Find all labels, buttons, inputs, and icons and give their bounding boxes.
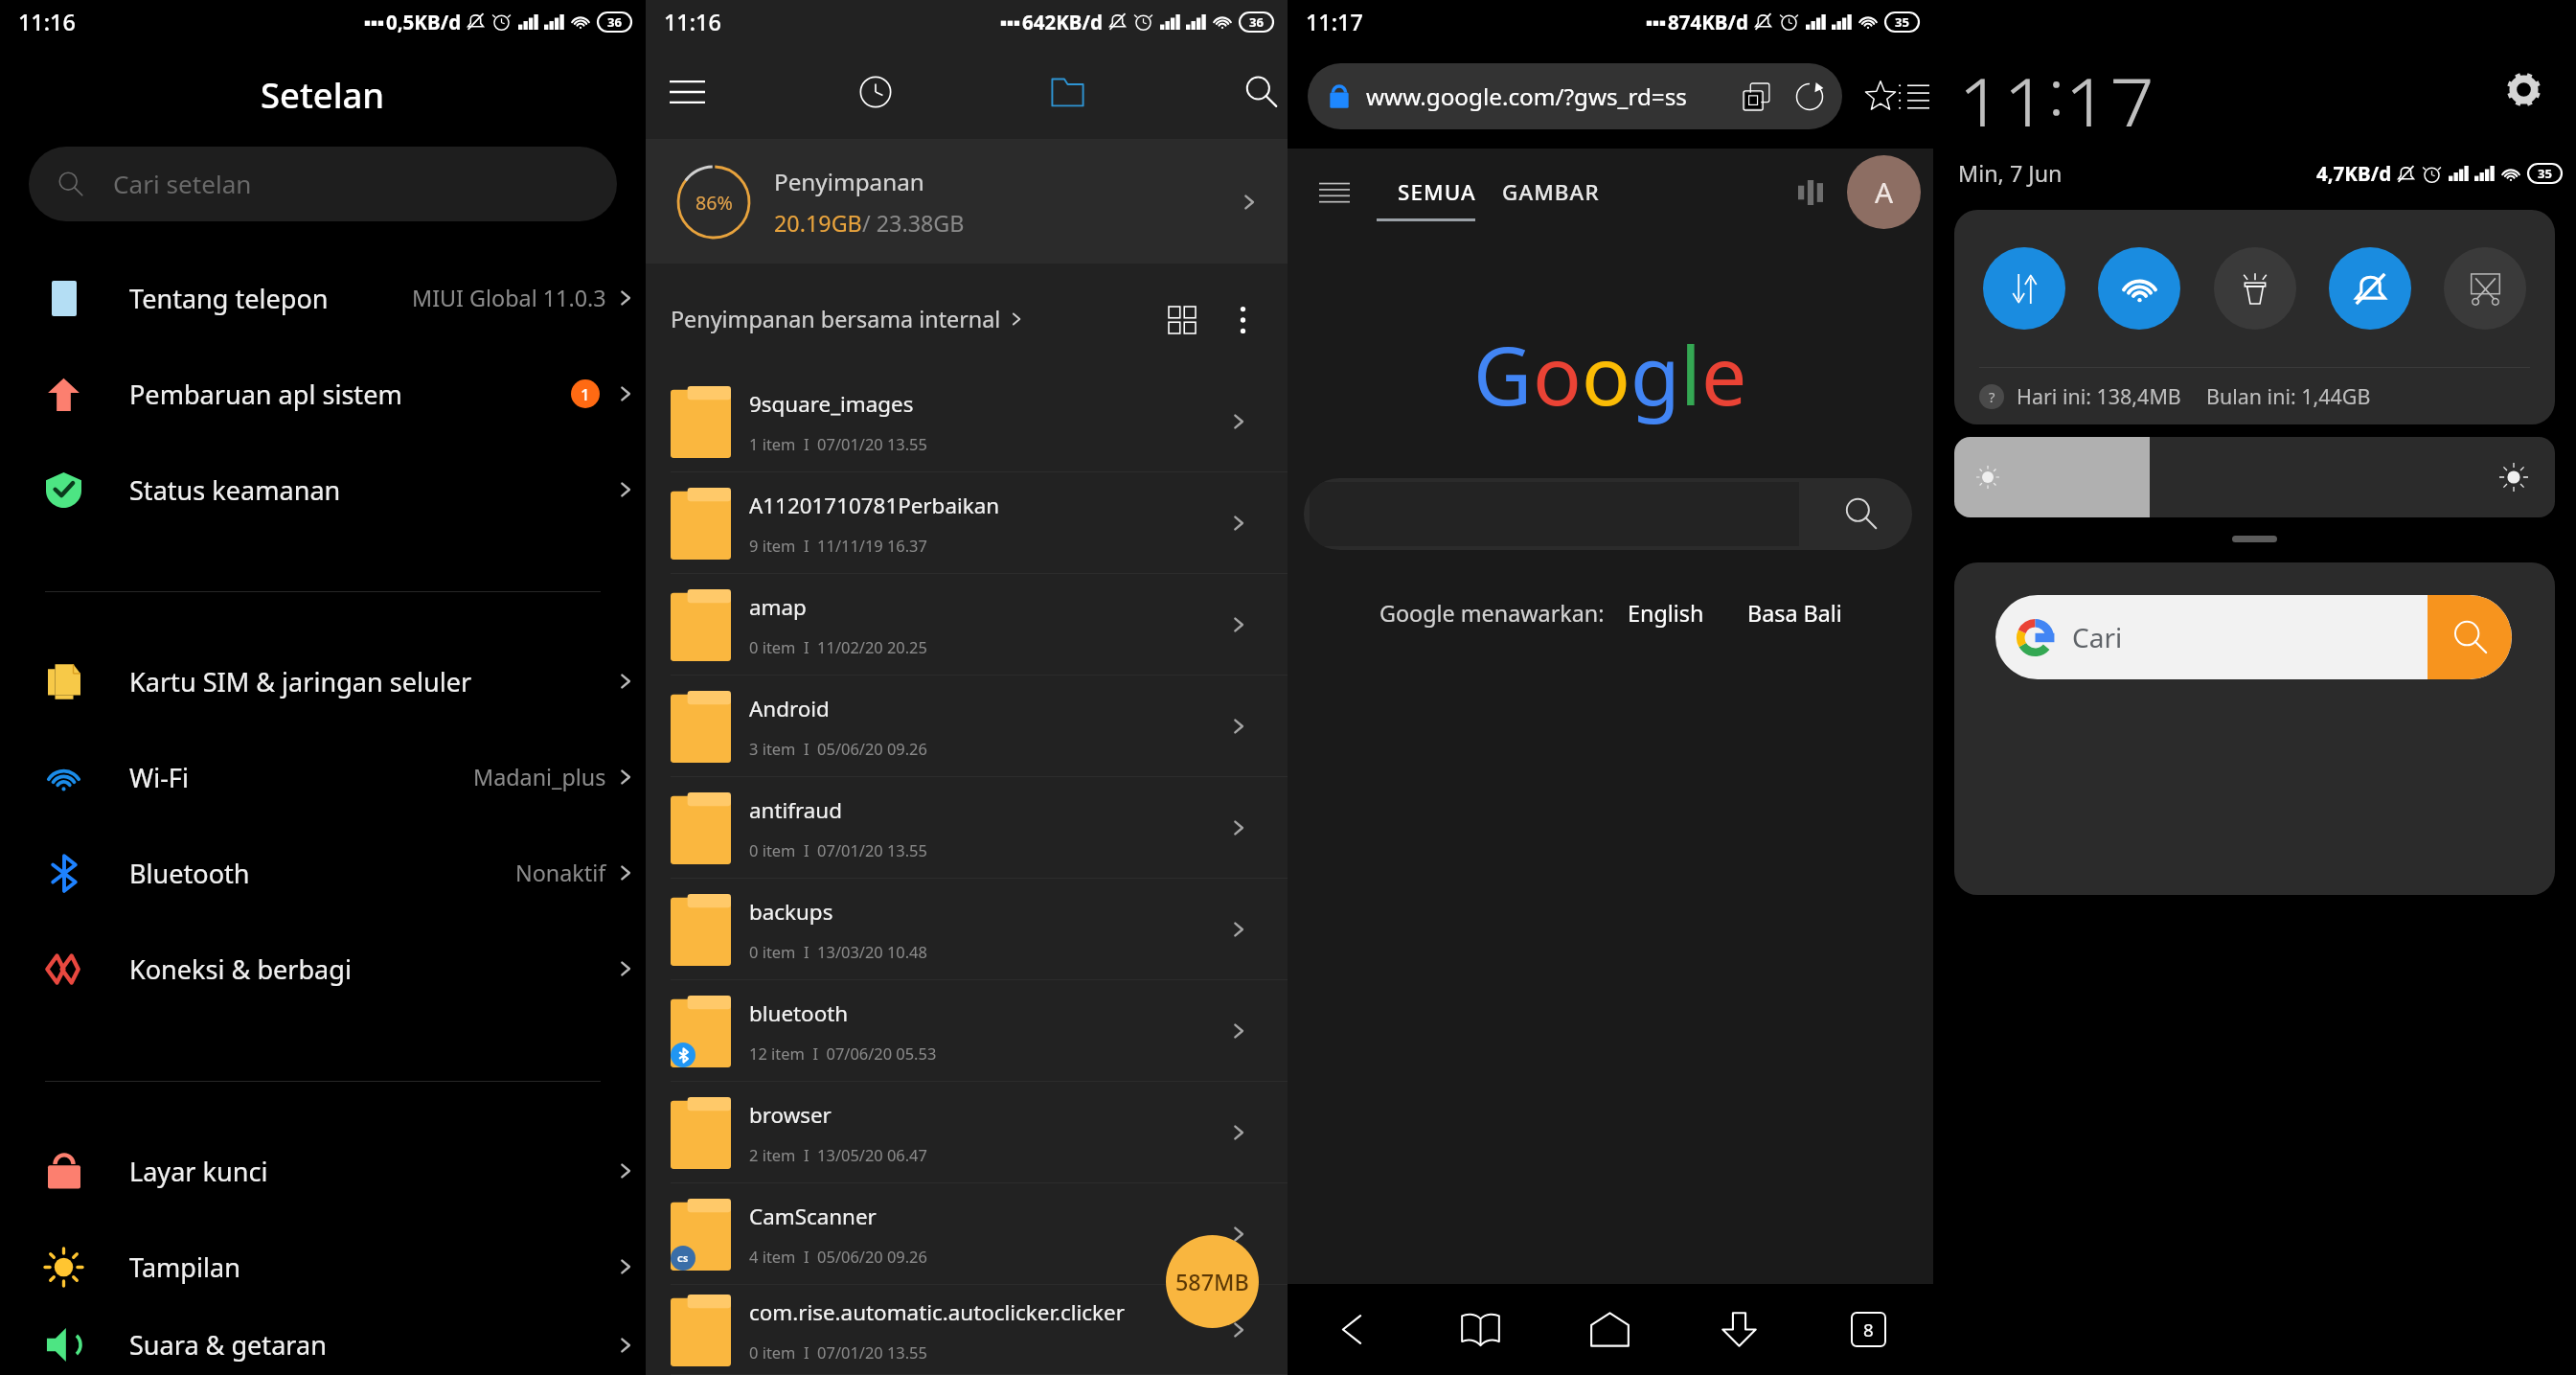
button[interactable]: Basa Bali xyxy=(1747,598,1842,629)
staticText: amap xyxy=(749,592,807,622)
button[interactable]: Recent xyxy=(854,70,897,113)
staticText: 36 xyxy=(1249,13,1264,31)
button[interactable]: Grid view xyxy=(1158,296,1205,343)
button[interactable]: Back xyxy=(1288,1284,1416,1375)
button[interactable]: Flashlight xyxy=(2214,247,2296,330)
button[interactable]: 86% xyxy=(646,140,1288,264)
staticText: 35 xyxy=(1895,13,1909,31)
staticText: www.google.com/?gws_rd=ss xyxy=(1366,80,1687,112)
button[interactable]: Search xyxy=(1240,70,1283,113)
button[interactable]: antifraud xyxy=(646,777,1288,879)
button[interactable]: SEMUA xyxy=(1391,167,1483,218)
button[interactable]: Storage used 587MB xyxy=(1166,1235,1259,1328)
button[interactable]: bluetooth xyxy=(646,980,1288,1082)
staticText: English xyxy=(1628,598,1704,629)
staticText: g xyxy=(1630,319,1680,428)
button[interactable]: Kartu SIM & jaringan seluler xyxy=(0,633,646,729)
button[interactable]: Suara & getaran xyxy=(0,1315,646,1375)
button[interactable]: Downloads xyxy=(1675,1284,1804,1375)
button[interactable]: Pembaruan apl sistem xyxy=(0,346,646,442)
button[interactable]: backups xyxy=(646,879,1288,980)
staticText: 8 xyxy=(1863,1318,1874,1341)
staticText: Nonaktif xyxy=(515,858,606,888)
staticText: 0,5KB/d xyxy=(386,9,462,35)
button[interactable]: Home xyxy=(1545,1284,1675,1375)
button[interactable]: Menu xyxy=(666,70,709,113)
button[interactable]: Silent xyxy=(2329,247,2411,330)
button[interactable]: A11201710781Perbaikan xyxy=(646,472,1288,574)
staticText: 3 item I 05/06/20 09.26 xyxy=(749,738,927,759)
staticText: Hari ini: 138,4MB xyxy=(2017,382,2181,410)
staticText: Bluetooth xyxy=(129,856,250,891)
staticText: Android xyxy=(749,694,830,723)
button[interactable]: Status keamanan xyxy=(0,442,646,538)
staticText: 587MB xyxy=(1175,1267,1249,1297)
staticText: 9 item I 11/11/19 16.37 xyxy=(749,535,927,556)
button[interactable]: Files xyxy=(1046,70,1089,113)
button[interactable]: Menu xyxy=(1894,77,1933,116)
staticText: A11201710781Perbaikan xyxy=(749,491,1000,520)
staticText: A xyxy=(1875,172,1894,212)
button[interactable]: Wi-Fi xyxy=(0,729,646,825)
button[interactable]: Lab xyxy=(1789,171,1832,214)
staticText: 11:16 xyxy=(18,7,76,37)
staticText: o xyxy=(1582,319,1630,428)
button[interactable]: Mobile data xyxy=(1983,247,2065,330)
staticText: 4 item I 05/06/20 09.26 xyxy=(749,1246,927,1267)
button[interactable]: 9square_images xyxy=(646,371,1288,472)
staticText: CS xyxy=(677,1252,689,1265)
staticText: 9square_images xyxy=(749,389,914,419)
button[interactable]: CS xyxy=(646,1183,1288,1285)
staticText: 0 item I 13/03/20 10.48 xyxy=(749,941,927,962)
staticText: / 23.38GB xyxy=(862,208,965,239)
staticText: GAMBAR xyxy=(1502,177,1600,207)
staticText: 17 xyxy=(2064,52,2154,126)
staticText: 0 item I 07/01/20 13.55 xyxy=(749,1341,927,1363)
staticText: Penyimpanan bersama internal xyxy=(671,304,1001,334)
button[interactable]: GAMBAR xyxy=(1495,167,1607,218)
staticText: SEMUA xyxy=(1398,177,1476,207)
staticText: 0 item I 11/02/20 20.25 xyxy=(749,636,927,657)
staticText: Tampilan xyxy=(129,1249,240,1285)
button[interactable]: Tabs xyxy=(1804,1284,1933,1375)
button[interactable]: Menu xyxy=(1312,171,1356,214)
staticText: Cari setelan xyxy=(113,167,252,201)
staticText: Koneksi & berbagi xyxy=(129,951,352,987)
button[interactable]: Cari xyxy=(1995,595,2512,679)
staticText: e xyxy=(1701,319,1747,428)
button[interactable]: www.google.com/?gws_rd=ss xyxy=(1308,63,1842,129)
button[interactable]: More options xyxy=(1220,296,1266,343)
staticText: ? xyxy=(1989,387,1995,406)
staticText: 4,7KB/d xyxy=(2316,160,2392,187)
button[interactable]: Search Google xyxy=(1304,478,1912,550)
button[interactable]: Bluetooth xyxy=(0,825,646,921)
button[interactable]: Layar kunci xyxy=(0,1123,646,1219)
staticText: Kartu SIM & jaringan seluler xyxy=(129,664,472,699)
button[interactable]: Penyimpanan bersama internal xyxy=(671,304,1028,334)
button[interactable]: Brightness xyxy=(1954,437,2555,517)
button[interactable]: Tentang telepon xyxy=(0,250,646,346)
staticText: backups xyxy=(749,897,833,927)
staticText: ▪▪▪ xyxy=(1646,16,1666,28)
staticText: Tentang telepon xyxy=(129,281,329,316)
staticText: 35 xyxy=(2538,165,2552,182)
staticText: Status keamanan xyxy=(129,472,341,508)
staticText: 12 item I 07/06/20 05.53 xyxy=(749,1043,937,1064)
button[interactable]: amap xyxy=(646,574,1288,676)
button[interactable]: Settings xyxy=(2500,66,2547,113)
button[interactable]: Bookmarks xyxy=(1416,1284,1545,1375)
button[interactable]: Tampilan xyxy=(0,1219,646,1315)
button[interactable]: Android xyxy=(646,676,1288,777)
staticText: 0 item I 07/01/20 13.55 xyxy=(749,839,927,860)
button[interactable]: browser xyxy=(646,1082,1288,1183)
button[interactable]: A xyxy=(1847,155,1921,229)
staticText: 11:17 xyxy=(1306,7,1363,37)
button[interactable]: English xyxy=(1628,598,1704,629)
button[interactable]: Wi-Fi xyxy=(2098,247,2180,330)
staticText: 874KB/d xyxy=(1668,9,1749,35)
button[interactable]: Koneksi & berbagi xyxy=(0,921,646,1017)
button[interactable]: com.rise.automatic.autoclicker.clicker xyxy=(646,1285,1288,1375)
button[interactable]: Bookmark xyxy=(1857,73,1904,120)
button[interactable]: Screenshot xyxy=(2444,247,2526,330)
button[interactable]: Cari setelan xyxy=(29,147,617,221)
